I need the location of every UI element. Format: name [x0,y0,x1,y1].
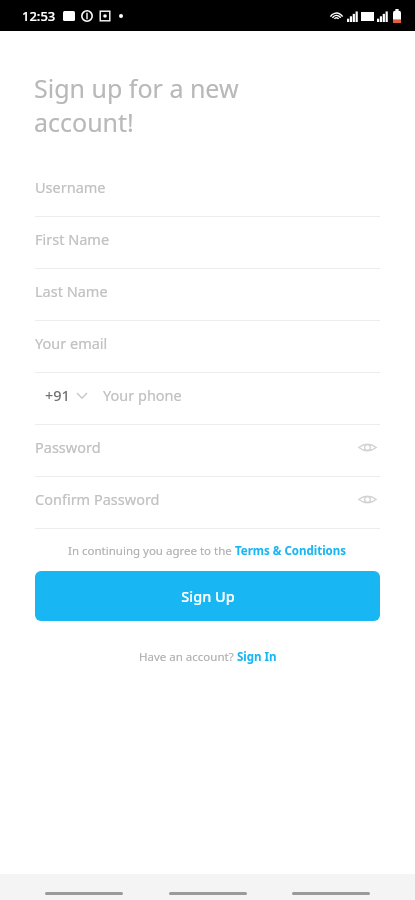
staticText: Sign Up [181,586,235,606]
button[interactable]: Password [0,425,415,477]
staticText: Confirm Password [35,489,160,509]
staticText: Terms & Conditions [235,543,347,559]
button[interactable]: Confirm Password [0,477,415,529]
staticText: Sign In [237,649,277,665]
staticText: Password [35,437,101,457]
staticText: In continuing you agree to the [68,543,235,559]
staticText: Your email [35,333,108,353]
button[interactable]: First Name [0,217,415,269]
button[interactable]: Toggle password visibility [355,435,379,459]
staticText: Have an account? [139,649,237,665]
staticText: Username [35,177,106,197]
staticText: Last Name [35,281,108,301]
button[interactable]: Sign Up [35,571,380,621]
button[interactable]: Terms & Conditions [235,543,347,559]
button[interactable]: Sign In [237,649,277,665]
staticText: First Name [35,229,110,249]
staticText: +91 [45,385,70,405]
staticText: 12:53 [22,7,56,25]
button[interactable]: Username [0,165,415,217]
button[interactable]: Your email [0,321,415,373]
button[interactable]: Last Name [0,269,415,321]
button[interactable]: Toggle password visibility [355,487,379,511]
staticText: Your phone [103,385,182,405]
button[interactable]: +91 [0,373,415,425]
staticText: Sign up for a new account! [34,71,239,139]
